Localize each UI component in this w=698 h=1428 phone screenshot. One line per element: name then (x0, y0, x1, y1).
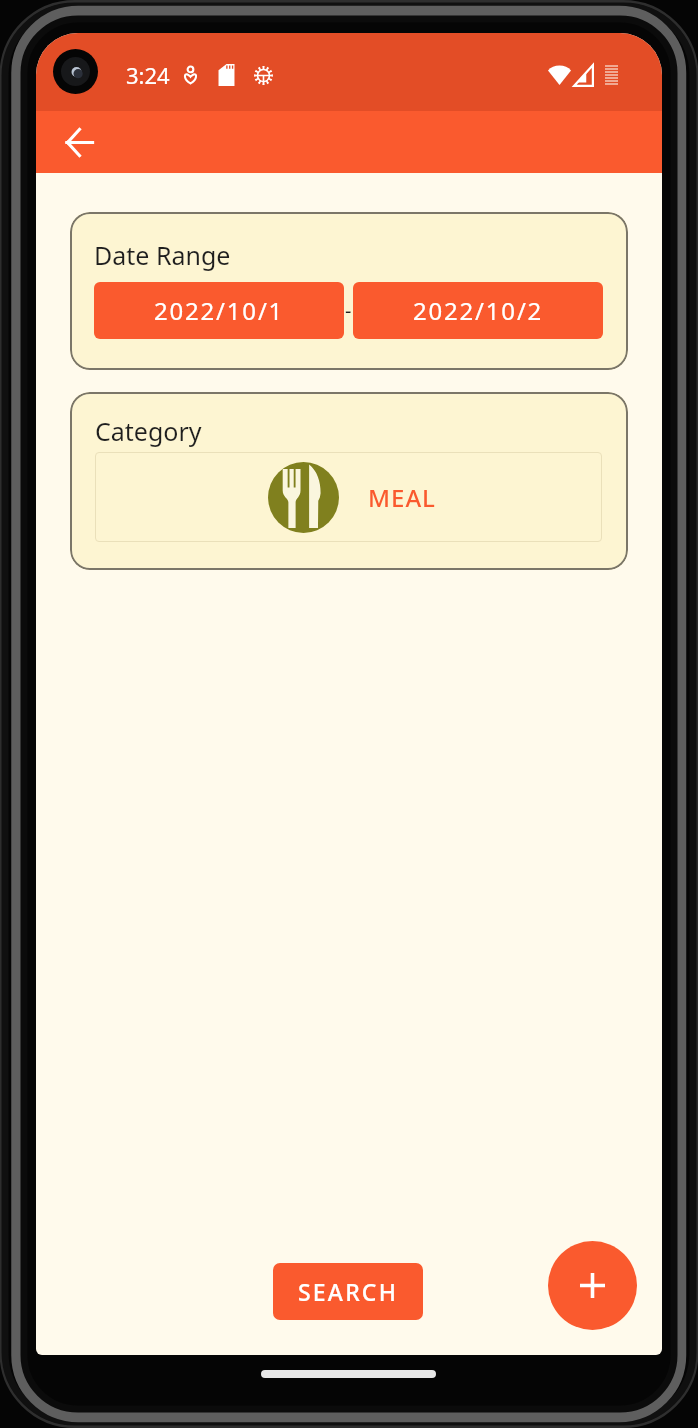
staticText: SEARCH (298, 1276, 399, 1307)
staticText: MEAL (368, 481, 436, 514)
staticText: 3:24 (126, 60, 170, 90)
staticText: Category (95, 414, 202, 448)
button[interactable]: 2022/10/2 (353, 282, 603, 339)
staticText: - (345, 297, 352, 324)
button[interactable]: Back (54, 117, 104, 167)
button[interactable]: 2022/10/1 (94, 282, 344, 339)
staticText: Date Range (94, 238, 231, 272)
button[interactable]: MEAL (95, 452, 602, 542)
staticText: 2022/10/2 (413, 294, 544, 327)
button[interactable]: SEARCH (273, 1263, 423, 1320)
staticText: 2022/10/1 (154, 294, 285, 327)
button[interactable]: Add (548, 1241, 637, 1330)
